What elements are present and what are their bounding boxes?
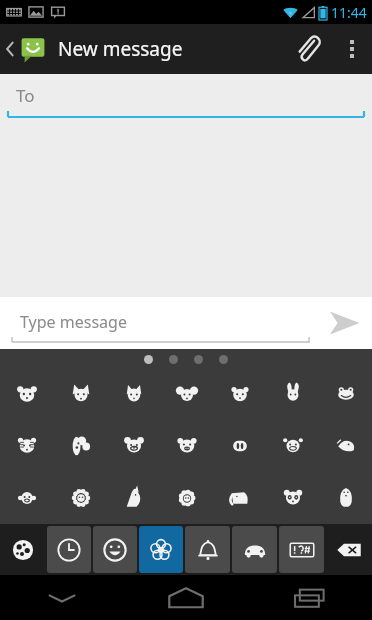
button[interactable]: Smileys — [93, 526, 137, 573]
button[interactable]: Emoji 14 — [319, 420, 372, 472]
button[interactable]: Emoji 4 — [160, 369, 213, 420]
button[interactable]: Objects — [185, 526, 230, 573]
button[interactable]: Emoji 9 — [54, 420, 107, 472]
button[interactable]: Emoji 19 — [213, 472, 266, 524]
button[interactable]: Emoji 16 — [54, 472, 107, 524]
button[interactable]: Emoji 18 — [160, 472, 213, 524]
button[interactable]: Symbols — [279, 526, 324, 573]
staticText: To — [16, 84, 35, 107]
button[interactable]: Emoji 20 — [266, 472, 319, 524]
button[interactable]: Emoji 1 — [0, 369, 54, 420]
staticText: Type message — [20, 311, 127, 333]
button[interactable]: Emoji 11 — [160, 420, 213, 472]
button[interactable]: Emoji 2 — [54, 369, 107, 420]
button[interactable]: Emoji 13 — [266, 420, 319, 472]
button[interactable]: Emoji 10 — [107, 420, 160, 472]
button[interactable]: Emoji 12 — [213, 420, 266, 472]
staticText: New message — [58, 36, 183, 62]
button[interactable]: Backspace — [326, 526, 371, 573]
button[interactable]: To — [0, 74, 372, 120]
button[interactable]: Emoji 7 — [319, 369, 372, 420]
staticText: 11:44 — [331, 3, 367, 22]
button[interactable]: Emoji 17 — [107, 472, 160, 524]
button[interactable]: Navigate up — [0, 34, 191, 64]
button[interactable]: Attach — [284, 24, 332, 74]
button[interactable]: Hide keyboard — [0, 575, 124, 620]
button[interactable]: Emoji 5 — [213, 369, 266, 420]
button[interactable]: Emoji 8 — [0, 420, 54, 472]
button[interactable]: Emoji 15 — [0, 472, 54, 524]
button[interactable]: Recent — [47, 526, 91, 573]
button[interactable]: Send — [316, 297, 372, 349]
button[interactable]: More options — [332, 24, 372, 74]
button[interactable]: Emoji 3 — [107, 369, 160, 420]
button[interactable]: Recent apps — [248, 575, 372, 620]
button[interactable]: Type message — [12, 303, 310, 343]
button[interactable]: Places — [232, 526, 277, 573]
button[interactable]: Language — [1, 526, 45, 573]
button[interactable]: Nature — [139, 526, 183, 573]
button[interactable]: Home — [124, 575, 248, 620]
button[interactable]: Emoji 21 — [319, 472, 372, 524]
button[interactable]: Emoji 6 — [266, 369, 319, 420]
